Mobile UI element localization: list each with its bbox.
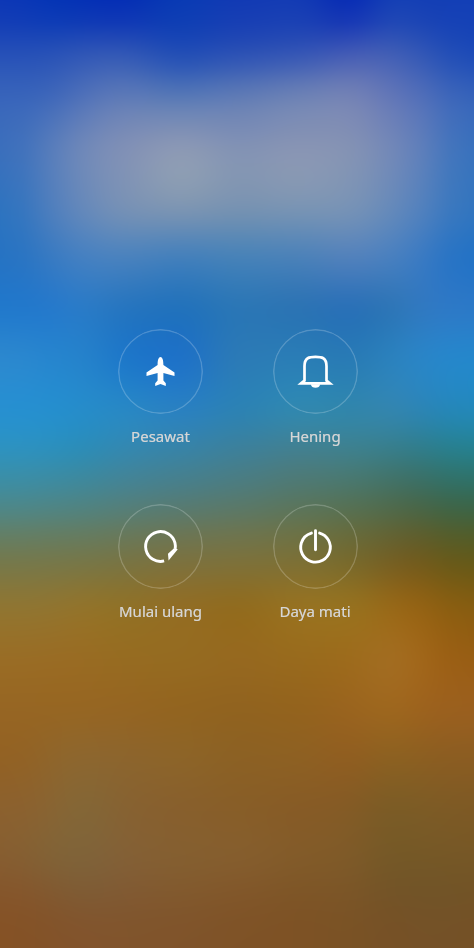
button[interactable]: Pesawat [118,329,203,414]
staticText: Pesawat [131,426,190,446]
staticText: Mulai ulang [119,601,202,621]
staticText: Hening [289,426,341,446]
button[interactable]: Mulai ulang [118,504,203,589]
staticText: Daya mati [279,601,351,621]
button[interactable]: Daya mati [273,504,358,589]
button[interactable]: Hening [273,329,358,414]
